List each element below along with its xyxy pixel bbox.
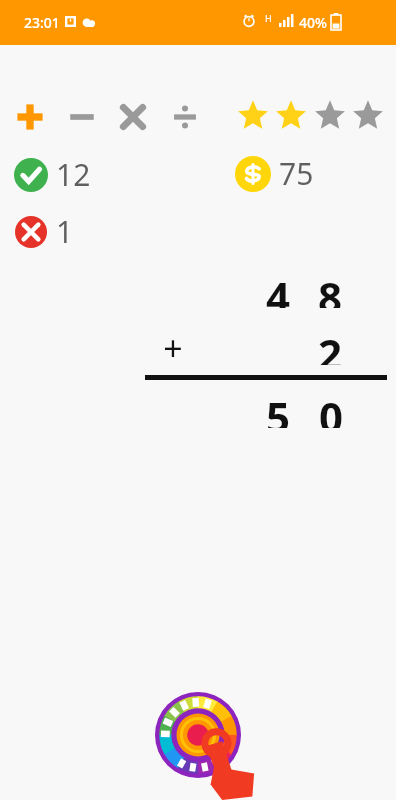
button[interactable]: Division bbox=[164, 96, 206, 138]
staticText: 0 bbox=[311, 388, 351, 428]
staticText: 1 bbox=[56, 211, 74, 252]
button[interactable]: Coins 75 bbox=[233, 151, 316, 196]
button[interactable]: Star 2 bbox=[274, 99, 308, 133]
button[interactable]: Correct answers 12 bbox=[12, 152, 93, 197]
button[interactable]: Subtraction bbox=[61, 96, 103, 138]
button[interactable]: Star 1 bbox=[236, 99, 270, 133]
staticText: 40% bbox=[299, 13, 327, 32]
staticText: 75 bbox=[279, 153, 314, 194]
staticText: 4 bbox=[258, 268, 298, 308]
button[interactable]: Star 4 bbox=[351, 99, 385, 133]
staticText: 8 bbox=[310, 268, 350, 308]
button[interactable]: Column Math home bbox=[155, 692, 241, 778]
staticText: 2 bbox=[310, 325, 350, 365]
button[interactable]: Star 3 bbox=[313, 99, 347, 133]
button[interactable]: Multiplication bbox=[112, 96, 154, 138]
button[interactable]: Addition bbox=[9, 96, 51, 138]
staticText: H bbox=[265, 12, 272, 24]
staticText: 12 bbox=[56, 154, 91, 195]
button[interactable]: Wrong answers 1 bbox=[13, 209, 76, 254]
staticText: + bbox=[153, 325, 193, 365]
staticText: 23:01 bbox=[24, 13, 60, 32]
staticText: 5 bbox=[258, 388, 298, 428]
